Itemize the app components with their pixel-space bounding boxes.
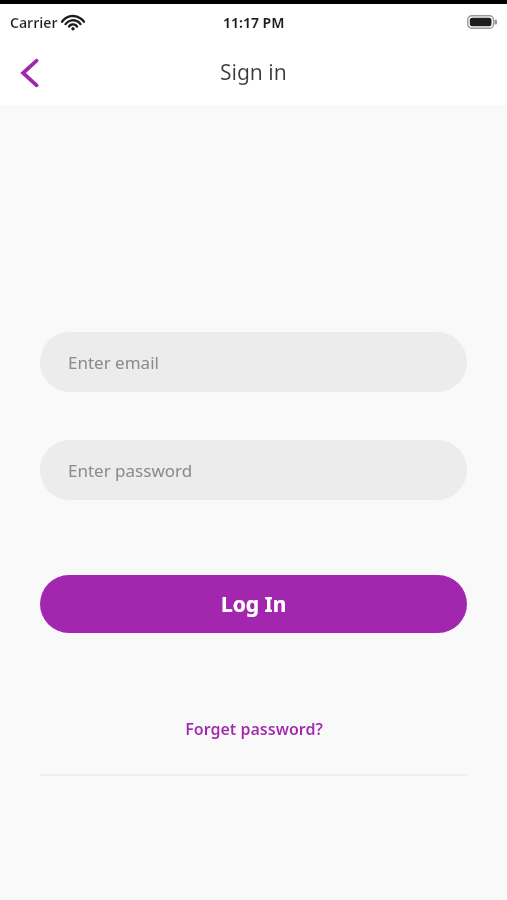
staticText: Sign in [220,58,287,87]
button[interactable]: Back [6,50,52,96]
staticText: 11:17 PM [223,13,285,32]
staticText: Log In [221,590,287,619]
button[interactable]: Enter password [40,440,467,500]
button[interactable]: Log In [40,575,467,633]
button[interactable]: Forget password? [173,712,335,746]
staticText: Enter password [68,459,193,482]
button[interactable]: Enter email [40,332,467,392]
staticText: Carrier [10,13,58,32]
staticText: Forget password? [185,718,323,740]
staticText: Enter email [68,351,159,374]
